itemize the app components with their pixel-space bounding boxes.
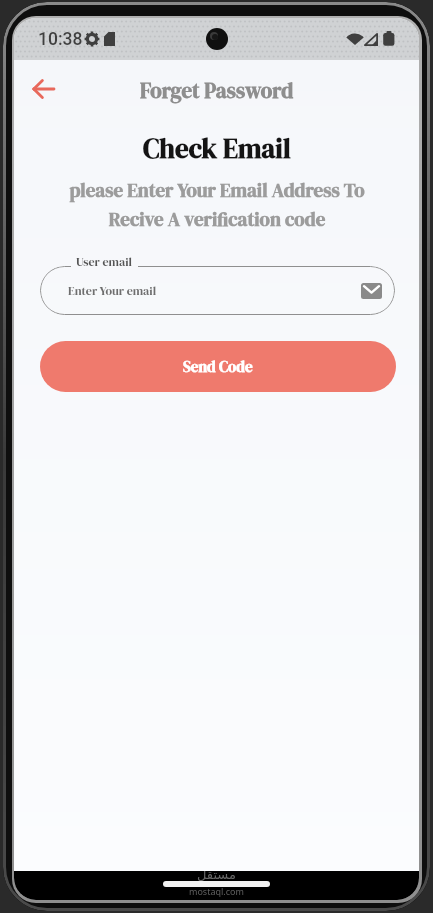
staticText: mostaql.com [189,885,244,897]
staticText: 10:38 [38,29,83,50]
button[interactable]: Enter Your email [40,266,395,315]
button[interactable]: Send Code [40,341,396,392]
staticText: Enter Your email [68,283,157,299]
staticText: User email [76,254,133,270]
staticText: Check Email [143,130,291,167]
staticText: please Enter Your Email Address To Reciv… [69,177,365,232]
staticText: مستقل [197,871,236,882]
staticText: Forget Password [140,76,294,105]
button[interactable] [22,68,64,110]
staticText: Send Code [183,356,253,377]
